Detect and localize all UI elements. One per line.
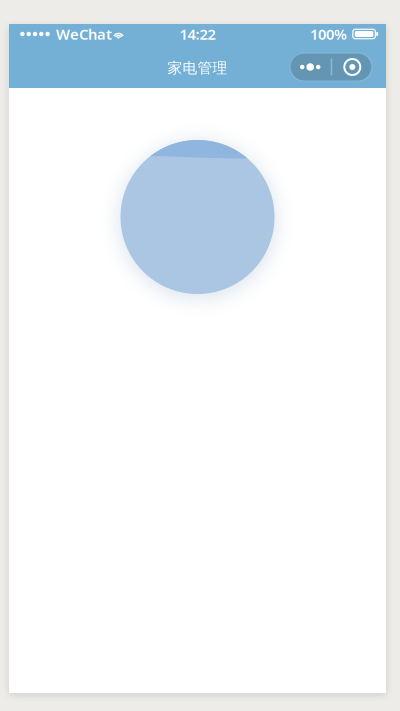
staticText: 14:22 [179,24,215,44]
staticText: 家电管理 [167,59,227,77]
staticText: WeChat [56,24,112,44]
button[interactable]: More options and close mini program [290,52,372,80]
staticText: 100% [310,24,347,44]
